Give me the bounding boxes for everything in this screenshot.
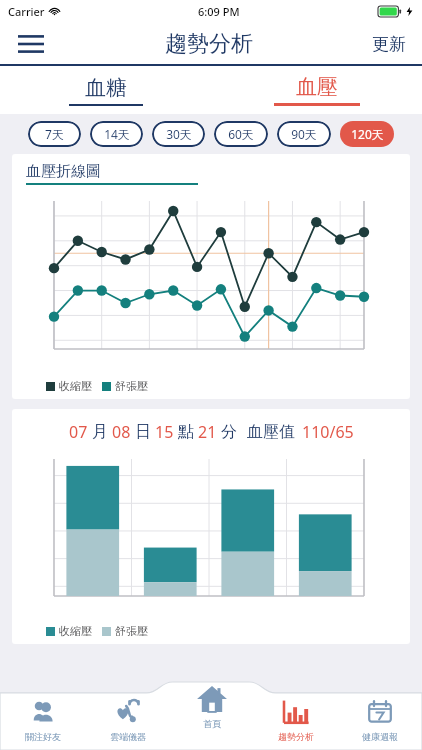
staticText: 15 [155,421,174,443]
button[interactable]: 趨勢分析 [254,682,338,750]
staticText: 60天 [228,126,254,142]
button[interactable]: 60天 [214,121,268,147]
staticText: 7天 [45,126,64,142]
staticText: 120天 [351,126,384,142]
button[interactable]: 更新 [370,30,408,59]
staticText: 舒張壓 [115,624,148,638]
button[interactable]: 健康週報 [338,682,422,750]
staticText: 分 [221,422,237,442]
staticText: 首頁 [203,718,221,729]
staticText: 6:09 PM [198,4,240,19]
button[interactable]: 90天 [277,121,331,147]
button[interactable]: 7天 [28,121,81,147]
staticText: 110/65 [302,421,354,443]
staticText: 雲端儀器 [110,731,146,742]
staticText: 點 [178,422,194,442]
staticText: 收縮壓 [59,624,92,638]
staticText: 血壓折線圖 [26,162,101,181]
staticText: 更新 [372,34,406,55]
staticText: 30天 [166,126,192,142]
button[interactable]: Menu [14,27,48,61]
button[interactable]: 雲端儀器 [85,682,170,750]
staticText: 血壓 [296,74,338,100]
staticText: 關注好友 [25,731,61,742]
staticText: 趨勢分析 [278,731,314,742]
staticText: 90天 [291,126,317,142]
button[interactable]: 120天 [340,121,394,147]
staticText: Carrier [8,4,45,19]
staticText: 日 [135,422,151,442]
button[interactable]: 血壓 [211,66,422,114]
staticText: 21 [198,421,217,443]
staticText: 血糖 [85,75,127,101]
staticText: 健康週報 [362,731,398,742]
staticText: 血壓值 [247,422,295,442]
button[interactable]: 30天 [152,121,205,147]
staticText: 收縮壓 [59,379,92,393]
button[interactable]: 首頁 [170,682,254,750]
staticText: 月 [92,422,108,442]
staticText: 趨勢分析 [165,30,253,58]
staticText: 08 [112,421,131,443]
button[interactable]: 血糖 [0,66,211,114]
staticText: 14天 [104,126,130,142]
button[interactable]: 14天 [90,121,143,147]
button[interactable]: 關注好友 [0,682,85,750]
staticText: 舒張壓 [115,379,148,393]
staticText: 07 [69,421,88,443]
